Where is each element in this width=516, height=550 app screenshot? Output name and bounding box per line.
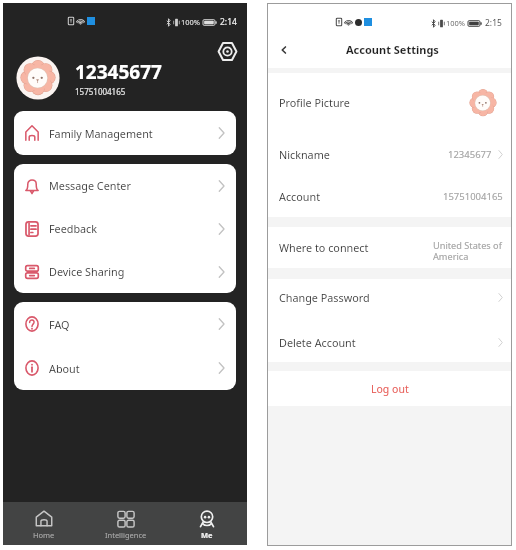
button[interactable]: Me: [166, 502, 247, 545]
button[interactable]: Profile Picture: [268, 75, 511, 130]
button[interactable]: Account: [268, 176, 511, 217]
staticText: Feedback: [49, 221, 98, 236]
staticText: Me: [201, 530, 213, 540]
button[interactable]: Log out: [268, 371, 511, 406]
staticText: Home: [33, 530, 55, 540]
staticText: Nickname: [279, 147, 330, 162]
staticText: About: [49, 361, 80, 376]
staticText: Where to connect: [279, 240, 369, 255]
button[interactable]: FAQ: [14, 302, 236, 346]
button[interactable]: Message Center: [14, 164, 236, 207]
staticText: 15751004165: [443, 190, 503, 203]
button[interactable]: Home: [3, 502, 85, 545]
staticText: Log out: [371, 382, 409, 396]
staticText: Message Center: [49, 178, 131, 193]
staticText: 12345677: [75, 59, 162, 85]
staticText: Account Settings: [346, 42, 439, 57]
staticText: Profile Picture: [279, 95, 350, 110]
staticText: Change Password: [279, 290, 370, 305]
staticText: United States of America: [433, 239, 505, 263]
staticText: 100%: [181, 17, 201, 27]
button[interactable]: Nickname: [268, 133, 511, 175]
staticText: FAQ: [49, 317, 70, 332]
button[interactable]: Back: [272, 40, 296, 64]
staticText: 2:14: [220, 16, 237, 28]
button[interactable]: Where to connect: [268, 227, 511, 268]
button[interactable]: Device Sharing: [14, 250, 236, 293]
button[interactable]: Change Password: [268, 276, 511, 319]
staticText: 100%: [446, 18, 466, 28]
staticText: Device Sharing: [49, 264, 125, 279]
button[interactable]: About: [14, 346, 236, 390]
staticText: Account: [279, 189, 321, 204]
staticText: Family Management: [49, 126, 153, 141]
button[interactable]: Delete Account: [268, 322, 511, 362]
staticText: 2:15: [485, 17, 502, 29]
staticText: Intelligence: [105, 530, 147, 540]
button[interactable]: Intelligence: [85, 502, 166, 545]
staticText: 12345677: [448, 148, 492, 161]
button[interactable]: Settings: [213, 37, 241, 65]
button[interactable]: Family Management: [14, 111, 236, 155]
button[interactable]: Feedback: [14, 207, 236, 250]
staticText: 15751004165: [75, 86, 126, 97]
staticText: Delete Account: [279, 335, 356, 350]
